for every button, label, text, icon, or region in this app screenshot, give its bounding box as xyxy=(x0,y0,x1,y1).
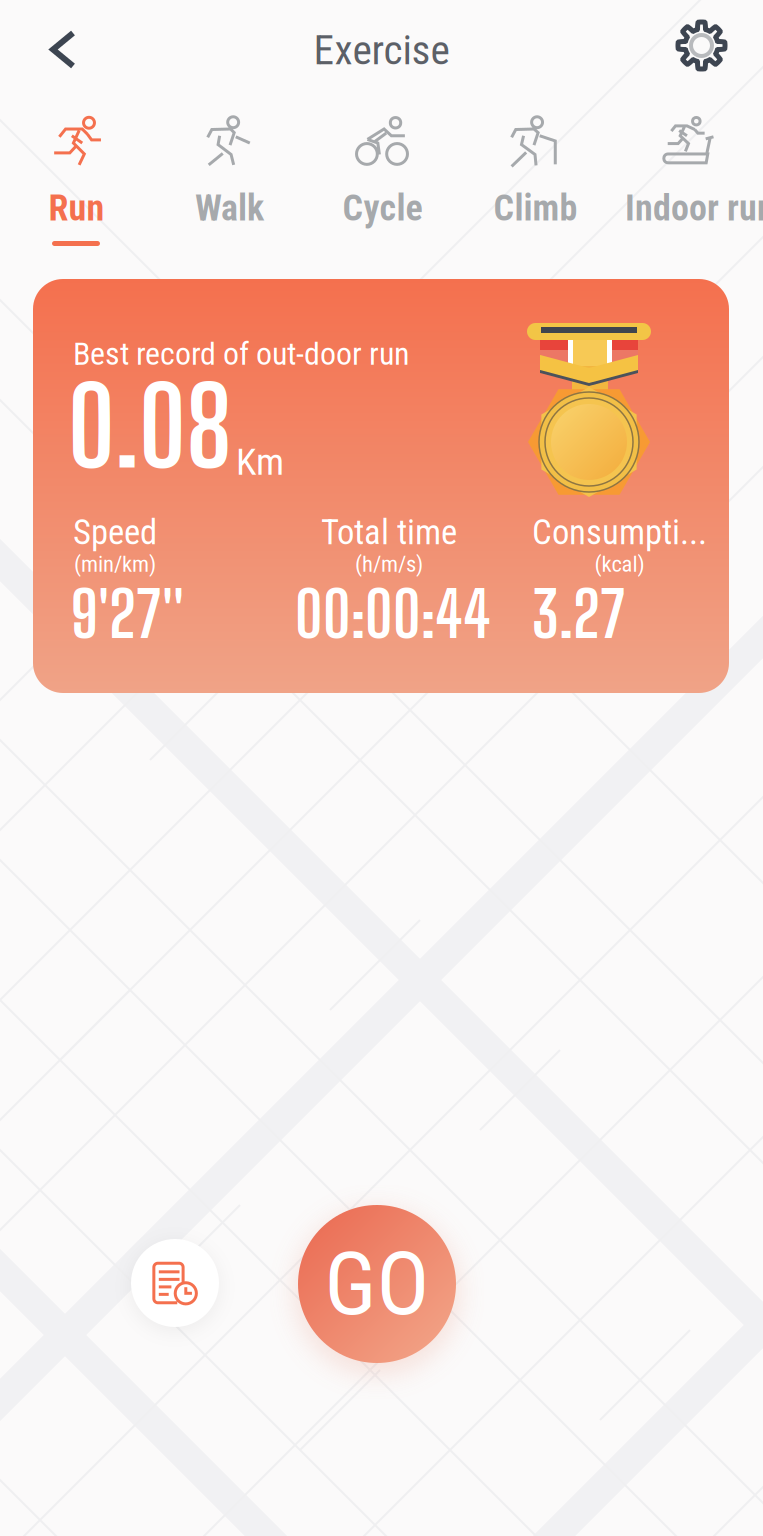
staticText: Exercise xyxy=(313,26,449,74)
staticText: Indoor running xyxy=(625,187,763,229)
staticText: Cycle xyxy=(342,187,422,229)
button[interactable]: Back xyxy=(25,9,101,90)
button[interactable]: History xyxy=(131,1239,219,1327)
staticText: 3.27 xyxy=(532,583,626,644)
staticText: Best record of out-door run xyxy=(73,335,410,372)
staticText: (min/km) xyxy=(74,551,156,577)
staticText: (kcal) xyxy=(594,551,644,577)
staticText: Run xyxy=(48,187,104,229)
button[interactable]: Climb xyxy=(459,94,612,279)
staticText: 9'27'' xyxy=(71,583,184,644)
staticText: Walk xyxy=(195,187,264,229)
staticText: (h/m/s) xyxy=(355,551,423,577)
staticText: Total time xyxy=(321,512,457,553)
button[interactable]: Settings xyxy=(656,0,747,91)
staticText: Climb xyxy=(493,187,577,229)
staticText: Km xyxy=(236,440,284,484)
staticText: GO xyxy=(324,1232,429,1335)
staticText: 00:00:44 xyxy=(295,583,491,644)
button[interactable]: Cycle xyxy=(306,94,459,279)
staticText: Speed xyxy=(73,512,157,553)
button[interactable]: GO xyxy=(298,1205,456,1363)
staticText: 0.08 xyxy=(68,374,232,479)
button[interactable]: Walk xyxy=(153,94,306,279)
button[interactable]: Indoor running xyxy=(612,94,763,279)
staticText: Consumpti... xyxy=(532,512,707,553)
button[interactable]: Run xyxy=(0,94,153,279)
